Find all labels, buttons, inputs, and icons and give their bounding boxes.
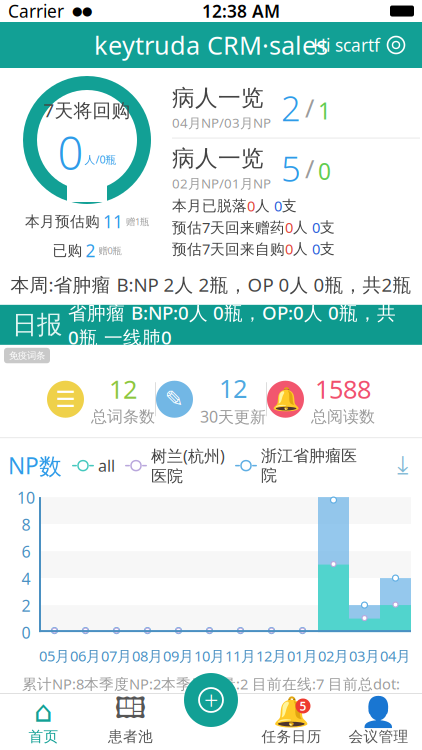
staticText: 已购 — [52, 241, 82, 259]
staticText: 0 — [285, 239, 293, 259]
staticText: 1588 — [315, 372, 371, 406]
staticText: 07月 — [101, 646, 132, 666]
staticText: 10月 — [194, 646, 225, 666]
button[interactable]: 🔔 — [248, 694, 335, 749]
staticText: 01月 — [287, 646, 318, 666]
staticText: 预估7天回来赠药 — [172, 218, 285, 237]
staticText: 赠1瓶 — [126, 215, 149, 228]
staticText: 2 — [85, 239, 95, 262]
staticText: 6 — [21, 541, 30, 562]
staticText: 12 — [219, 371, 247, 405]
staticText: 病人一览 — [172, 144, 264, 172]
staticText: 11 — [103, 210, 123, 233]
staticText: 02月 — [318, 646, 349, 666]
staticText: 2 — [281, 85, 301, 131]
staticText: 👤 — [360, 695, 397, 728]
staticText: / — [305, 151, 314, 185]
staticText: 总词条数 — [91, 407, 155, 426]
staticText: 树兰(杭州)医院 — [151, 445, 225, 486]
staticText: ⤓ — [397, 453, 408, 478]
staticText: 12:38 AM — [202, 0, 280, 22]
staticText: 08月 — [132, 646, 163, 666]
staticText: 省肿瘤 B:NP:0人 0瓶，OP:0人 0瓶，共0瓶 一线肺0 — [68, 300, 396, 350]
staticText: 09月 — [163, 646, 194, 666]
staticText: 支 — [320, 240, 335, 258]
staticText: Hi scartf — [313, 33, 380, 56]
staticText: 03月 — [349, 646, 380, 666]
staticText: 0 — [312, 239, 320, 259]
staticText: Carrier — [8, 0, 64, 22]
staticText: 支 — [282, 197, 297, 215]
staticText: 支 — [320, 218, 335, 236]
staticText: 06月 — [70, 646, 101, 666]
staticText: 8 — [21, 514, 30, 535]
staticText: 0 — [247, 196, 255, 216]
staticText: 10 — [17, 487, 35, 508]
button[interactable]: Add — [184, 673, 238, 727]
staticText: ☰ — [55, 386, 75, 412]
button[interactable]: ✎ — [156, 365, 266, 433]
staticText: all — [98, 455, 115, 476]
staticText: 累计NP:8本季度NP:2本季度销量:2 目前在线:7 目前总dot:1.00 … — [22, 674, 400, 713]
button[interactable]: Download — [391, 453, 414, 478]
staticText: 5 — [281, 145, 301, 191]
staticText: 5 — [299, 698, 306, 714]
staticText: 12月 — [256, 646, 287, 666]
button[interactable]: Settings — [303, 27, 416, 62]
staticText: ✎ — [165, 386, 184, 412]
staticText: 0 — [312, 218, 320, 237]
staticText: 7天将回购 — [43, 97, 130, 122]
staticText: 人/0瓶 — [84, 152, 116, 166]
button[interactable]: 病人一览 — [172, 84, 420, 137]
staticText: 赠0瓶 — [98, 244, 121, 257]
button[interactable]: 🔔 — [267, 366, 375, 432]
staticText: 2 — [21, 595, 30, 616]
staticText: 11月 — [225, 646, 256, 666]
staticText: 🔔 — [273, 695, 310, 728]
staticText: 04月NP/03月NP — [172, 114, 271, 131]
staticText: 🖽 — [114, 687, 146, 736]
staticText: 总阅读数 — [311, 407, 375, 426]
staticText: 0 — [57, 122, 83, 182]
staticText: 浙江省肿瘤医院 — [261, 446, 357, 485]
staticText: 30天更新 — [200, 406, 266, 427]
staticText: 本月已脱落 — [172, 197, 247, 215]
staticText: 人 — [293, 218, 312, 236]
staticText: 本周:省肿瘤 B:NP 2人 2瓶，OP 0人 0瓶，共2瓶 — [10, 272, 411, 297]
staticText: 12 — [109, 372, 137, 406]
staticText: 0 — [274, 196, 282, 216]
staticText: 0 — [285, 218, 293, 237]
staticText: 0 — [318, 156, 331, 186]
staticText: 05月 — [39, 646, 70, 666]
staticText: / — [305, 91, 314, 125]
staticText: DOT:1.00 脱落:1人 — [22, 714, 145, 734]
staticText: 任务日历 — [261, 727, 321, 745]
button[interactable]: 🖽 — [87, 694, 174, 749]
staticText: 04月 — [380, 646, 411, 666]
staticText: 免疫词条 — [9, 350, 45, 361]
button[interactable]: ⌂ — [0, 694, 87, 749]
staticText: 日报 — [12, 309, 62, 340]
staticText: NP数 — [8, 450, 62, 481]
staticText: 1 — [318, 96, 331, 126]
button[interactable]: ☰ — [47, 366, 155, 432]
button[interactable]: 病人一览 — [172, 138, 420, 192]
button[interactable]: 日报 — [0, 305, 422, 345]
staticText: ⌂ — [34, 695, 53, 728]
staticText: 4 — [21, 568, 30, 589]
staticText: 首页 — [28, 727, 58, 745]
staticText: 人 — [255, 197, 274, 215]
staticText: 病人一览 — [172, 84, 264, 112]
staticText: 02月NP/01月NP — [172, 174, 271, 192]
staticText: ●● — [72, 4, 92, 18]
staticText: 预估7天回来自购 — [172, 239, 285, 259]
staticText: 0 — [21, 622, 30, 643]
staticText: 人 — [293, 240, 312, 258]
button[interactable]: 👤 — [335, 694, 422, 749]
staticText: 患者池 — [108, 727, 153, 745]
staticText: keytruda CRM·sales — [94, 28, 328, 62]
staticText: + — [204, 683, 218, 717]
staticText: 🔔 — [271, 386, 299, 412]
staticText: 会议管理 — [348, 727, 408, 745]
staticText: 本月预估购 — [25, 212, 100, 230]
